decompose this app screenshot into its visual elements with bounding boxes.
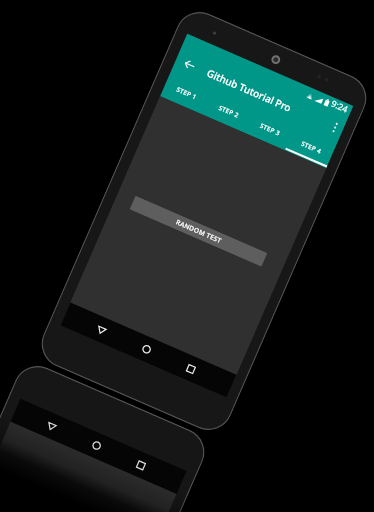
staticText: Github Tutorial Pro	[205, 66, 294, 115]
button[interactable]: STEP 2	[203, 90, 254, 131]
staticText: STEP 3	[259, 121, 282, 137]
button[interactable]: Recent apps	[130, 451, 152, 479]
button[interactable]: Back	[90, 315, 113, 344]
button[interactable]: More options	[325, 117, 346, 138]
staticText: STEP 4	[300, 139, 323, 155]
button[interactable]: STEP 3	[244, 108, 296, 149]
button[interactable]: RANDOM TEST	[129, 196, 267, 267]
button[interactable]: Home	[85, 431, 108, 460]
staticText: STEP 1	[175, 84, 198, 100]
staticText: STEP 2	[217, 103, 241, 119]
button[interactable]: Home	[135, 335, 157, 363]
button[interactable]: Back	[177, 52, 202, 77]
staticText: RANDOM TEST	[175, 217, 223, 245]
button[interactable]: Back	[40, 412, 63, 440]
staticText: 9:24	[330, 98, 350, 115]
button[interactable]: Recent apps	[180, 354, 202, 383]
button[interactable]: STEP 1	[160, 71, 213, 114]
button[interactable]: STEP 4	[285, 126, 337, 167]
